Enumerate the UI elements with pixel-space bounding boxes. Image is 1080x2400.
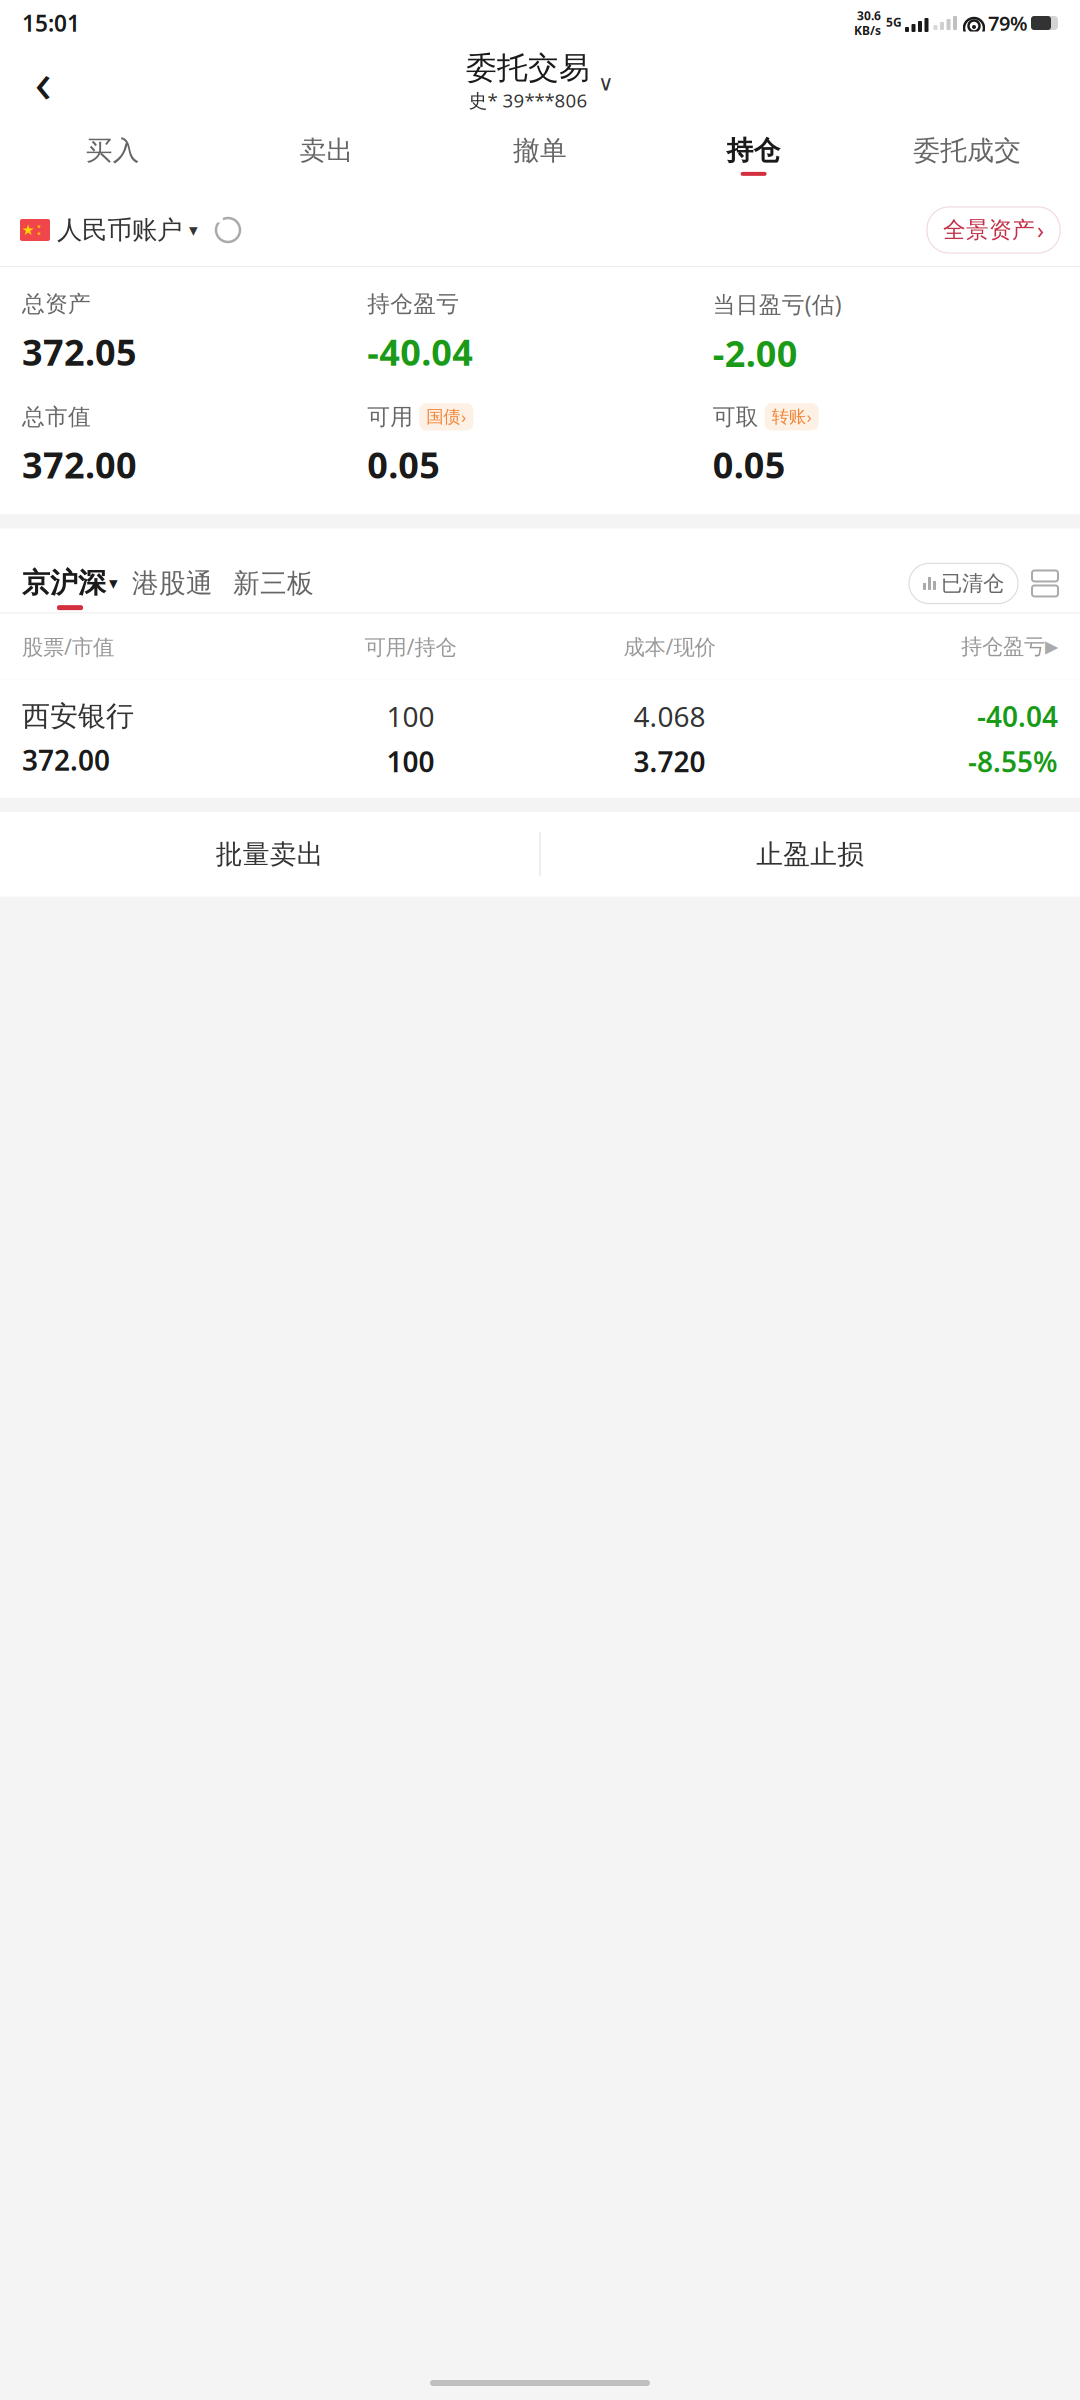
button[interactable]: 国债 (419, 403, 473, 430)
staticText: 持仓盈亏 (961, 633, 1045, 660)
staticText: 京沪深 (22, 566, 106, 600)
button[interactable]: 卖出 (220, 126, 433, 184)
staticText: 3.720 (633, 743, 705, 780)
staticText: -2.00 (713, 329, 798, 377)
staticText: 100 (386, 743, 434, 780)
button[interactable]: 委托交易 (456, 45, 624, 117)
staticText: 新三板 (233, 567, 314, 600)
button[interactable]: 委托成交 (860, 126, 1074, 184)
staticText: 已清仓 (941, 570, 1004, 597)
button[interactable]: ★ (20, 208, 198, 251)
staticText: › (1037, 215, 1044, 245)
staticText: ‹ (34, 44, 51, 118)
button[interactable]: 撤单 (433, 126, 647, 184)
staticText: 15:01 (22, 8, 80, 38)
staticText: -8.55% (968, 743, 1058, 780)
staticText: 委托交易 (466, 49, 590, 87)
staticText: 撤单 (513, 134, 567, 167)
staticText: ★ (36, 230, 41, 237)
staticText: ★ (21, 222, 34, 238)
staticText: 可取 (713, 403, 759, 431)
staticText: 372.05 (22, 328, 137, 376)
staticText: 372.00 (22, 441, 137, 489)
staticText: ★ (36, 223, 41, 229)
staticText: 全景资产 (943, 216, 1035, 244)
staticText: 30.6 (857, 8, 881, 23)
staticText: › (807, 406, 812, 427)
button[interactable]: 港股通 (118, 567, 227, 609)
button[interactable]: 西安银行 (0, 680, 1080, 798)
button[interactable]: 新三板 (227, 567, 320, 609)
staticText: 可用 (367, 403, 413, 431)
staticText: 持仓 (727, 134, 781, 167)
staticText: 100 (386, 698, 434, 735)
staticText: 总市值 (22, 403, 91, 431)
staticText: 总资产 (22, 290, 91, 318)
staticText: -40.04 (367, 328, 473, 376)
button[interactable]: Change layout (1018, 570, 1058, 605)
staticText: 止盈止损 (756, 838, 864, 871)
staticText: 0.05 (367, 441, 440, 489)
staticText: 可用/持仓 (364, 632, 456, 661)
staticText: ▾ (189, 220, 198, 240)
staticText: 当日盈亏(估) (713, 289, 842, 319)
staticText: 0.05 (713, 441, 786, 489)
button[interactable]: 买入 (6, 126, 220, 184)
staticText: 持仓盈亏 (367, 290, 459, 318)
staticText: › (461, 406, 466, 427)
staticText: 西安银行 (22, 699, 134, 733)
staticText: 委托成交 (913, 134, 1021, 167)
button[interactable]: 京沪深 (22, 566, 118, 610)
staticText: 转账 (772, 406, 806, 427)
button[interactable]: 批量卖出 (0, 812, 539, 897)
button[interactable]: 转账 (765, 403, 819, 430)
staticText: ∨ (598, 71, 614, 95)
staticText: 5G (886, 14, 902, 30)
staticText: 成本/现价 (623, 632, 715, 661)
staticText: -40.04 (977, 698, 1058, 735)
staticText: 港股通 (132, 567, 213, 600)
staticText: 批量卖出 (216, 838, 324, 871)
staticText: 买入 (86, 134, 140, 167)
button[interactable]: 止盈止损 (540, 812, 1080, 897)
staticText: 4.068 (633, 698, 705, 735)
staticText: KB/s (854, 22, 881, 38)
staticText: 卖出 (299, 134, 353, 167)
staticText: 372.00 (22, 741, 110, 778)
staticText: ▶ (1045, 637, 1058, 656)
staticText: 79% (988, 10, 1028, 36)
button[interactable]: 全景资产 (927, 207, 1060, 253)
button[interactable]: 持仓 (647, 126, 860, 184)
staticText: ▾ (109, 573, 118, 593)
button[interactable]: Back (16, 54, 70, 108)
staticText: 国债 (426, 406, 460, 427)
staticText: 股票/市值 (22, 632, 114, 661)
staticText: 史* 39***806 (468, 88, 587, 113)
button[interactable]: Refresh (198, 212, 242, 248)
button[interactable]: 已清仓 (909, 563, 1018, 613)
staticText: 人民币账户 (57, 214, 182, 245)
